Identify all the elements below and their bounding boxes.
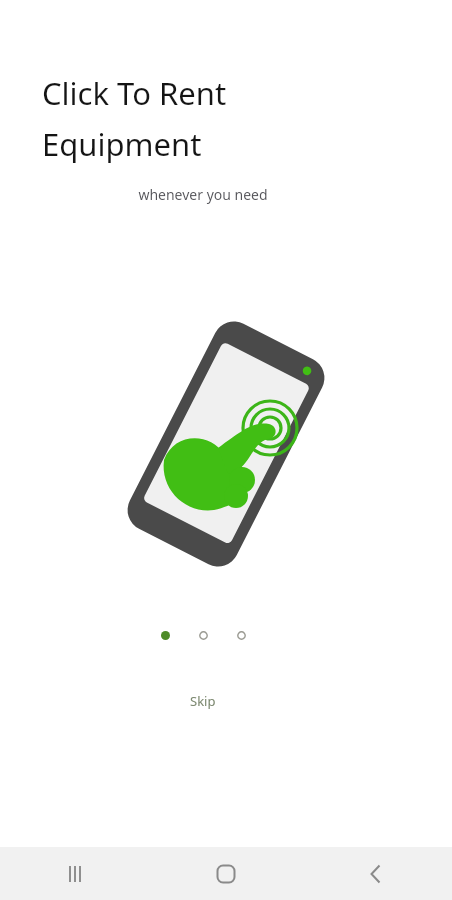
staticText: Click To Rent <box>42 72 227 114</box>
button[interactable] <box>154 624 176 646</box>
other: Tap the phone illustration <box>121 308 331 580</box>
button[interactable]: Home <box>150 847 301 900</box>
staticText: Skip <box>190 692 216 710</box>
staticText: Equipment <box>42 123 202 165</box>
button[interactable]: Back <box>301 847 452 900</box>
button[interactable]: Recent apps <box>0 847 150 900</box>
button[interactable]: Skip <box>170 686 236 716</box>
button[interactable] <box>192 624 214 646</box>
staticText: whenever you need <box>0 185 406 204</box>
button[interactable] <box>230 624 252 646</box>
